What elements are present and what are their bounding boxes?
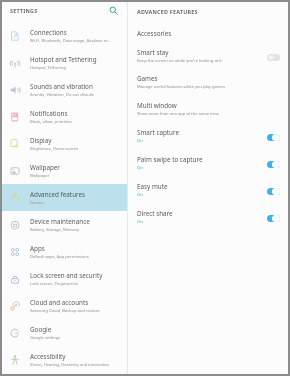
staticText: Advanced features (30, 190, 86, 199)
button[interactable]: Smart stay toggle (267, 54, 280, 61)
button[interactable]: Easy mute (128, 176, 288, 203)
staticText: Hotspot and Tethering (30, 55, 97, 64)
staticText: Show more than one app at the same time (137, 111, 219, 117)
button[interactable]: Display (2, 130, 127, 157)
staticText: Wallpaper (30, 163, 60, 172)
button[interactable]: Apps (2, 238, 127, 265)
staticText: Samsung Cloud, Backup and restore (30, 308, 100, 314)
staticText: On (137, 138, 143, 144)
staticText: Vision, Hearing, Dexterity and interacti… (30, 362, 110, 368)
button[interactable]: Google (2, 319, 127, 346)
button[interactable]: Accessories (128, 23, 288, 43)
button[interactable]: Accessibility (2, 346, 127, 373)
staticText: Sounds, Vibration, Do not disturb (30, 92, 94, 98)
staticText: On (137, 192, 143, 198)
button[interactable]: Connections (2, 22, 127, 49)
staticText: Lock screen and security (30, 271, 103, 280)
staticText: Games (30, 200, 44, 206)
button[interactable]: Smart stay (128, 43, 288, 68)
staticText: SETTINGS (10, 7, 38, 14)
staticText: Device maintenance (30, 217, 90, 226)
staticText: Wi-Fi, Bluetooth, Data usage, Airplane m… (30, 38, 111, 44)
staticText: Google (30, 325, 52, 334)
button[interactable]: Palm swipe to capture toggle (267, 161, 280, 168)
button[interactable]: Smart capture (128, 122, 288, 149)
button[interactable]: Games (128, 68, 288, 95)
staticText: Palm swipe to capture (137, 155, 203, 164)
staticText: Display (30, 136, 52, 145)
button[interactable]: Sounds and vibration (2, 76, 127, 103)
staticText: Multi window (137, 101, 177, 110)
staticText: Lock screen, Fingerprints (30, 281, 79, 287)
staticText: Block, allow, prioritize (30, 119, 72, 125)
button[interactable]: Easy mute toggle (267, 188, 280, 195)
button[interactable]: Cloud and accounts (2, 292, 127, 319)
button[interactable]: Direct share toggle (267, 215, 280, 222)
staticText: Connections (30, 28, 67, 37)
button[interactable]: Search (104, 2, 122, 19)
staticText: ADVANCED FEATURES (137, 8, 198, 15)
button[interactable]: Device maintenance (2, 211, 127, 238)
button[interactable]: Palm swipe to capture (128, 149, 288, 176)
button[interactable]: Smart capture toggle (267, 134, 280, 141)
staticText: Smart capture (137, 128, 180, 137)
staticText: Keep the screen on while you're looking … (137, 58, 222, 64)
staticText: Google settings (30, 335, 61, 341)
staticText: Wallpaper (30, 173, 50, 179)
staticText: Accessories (137, 29, 172, 38)
staticText: Direct share (137, 209, 173, 218)
staticText: Games (137, 74, 158, 83)
button[interactable]: Wallpaper (2, 157, 127, 184)
button[interactable]: Advanced features (2, 184, 127, 211)
staticText: Easy mute (137, 182, 168, 191)
button[interactable]: Notifications (2, 103, 127, 130)
staticText: On (137, 165, 143, 171)
staticText: Battery, Storage, Memory (30, 227, 80, 233)
button[interactable]: Hotspot and Tethering (2, 49, 127, 76)
staticText: Hotspot, Tethering (30, 65, 66, 71)
staticText: Manage useful features while you play ga… (137, 84, 225, 90)
button[interactable]: Lock screen and security (2, 265, 127, 292)
staticText: Cloud and accounts (30, 298, 89, 307)
staticText: Accessibility (30, 352, 66, 361)
staticText: Default apps, App permissions (30, 254, 89, 260)
staticText: Sounds and vibration (30, 82, 93, 91)
staticText: Notifications (30, 109, 68, 118)
staticText: On (137, 219, 143, 225)
button[interactable]: Direct share (128, 203, 288, 230)
staticText: Apps (30, 244, 45, 253)
staticText: Brightness, Home screen (30, 146, 79, 152)
button[interactable]: Multi window (128, 95, 288, 122)
staticText: Smart stay (137, 48, 169, 57)
